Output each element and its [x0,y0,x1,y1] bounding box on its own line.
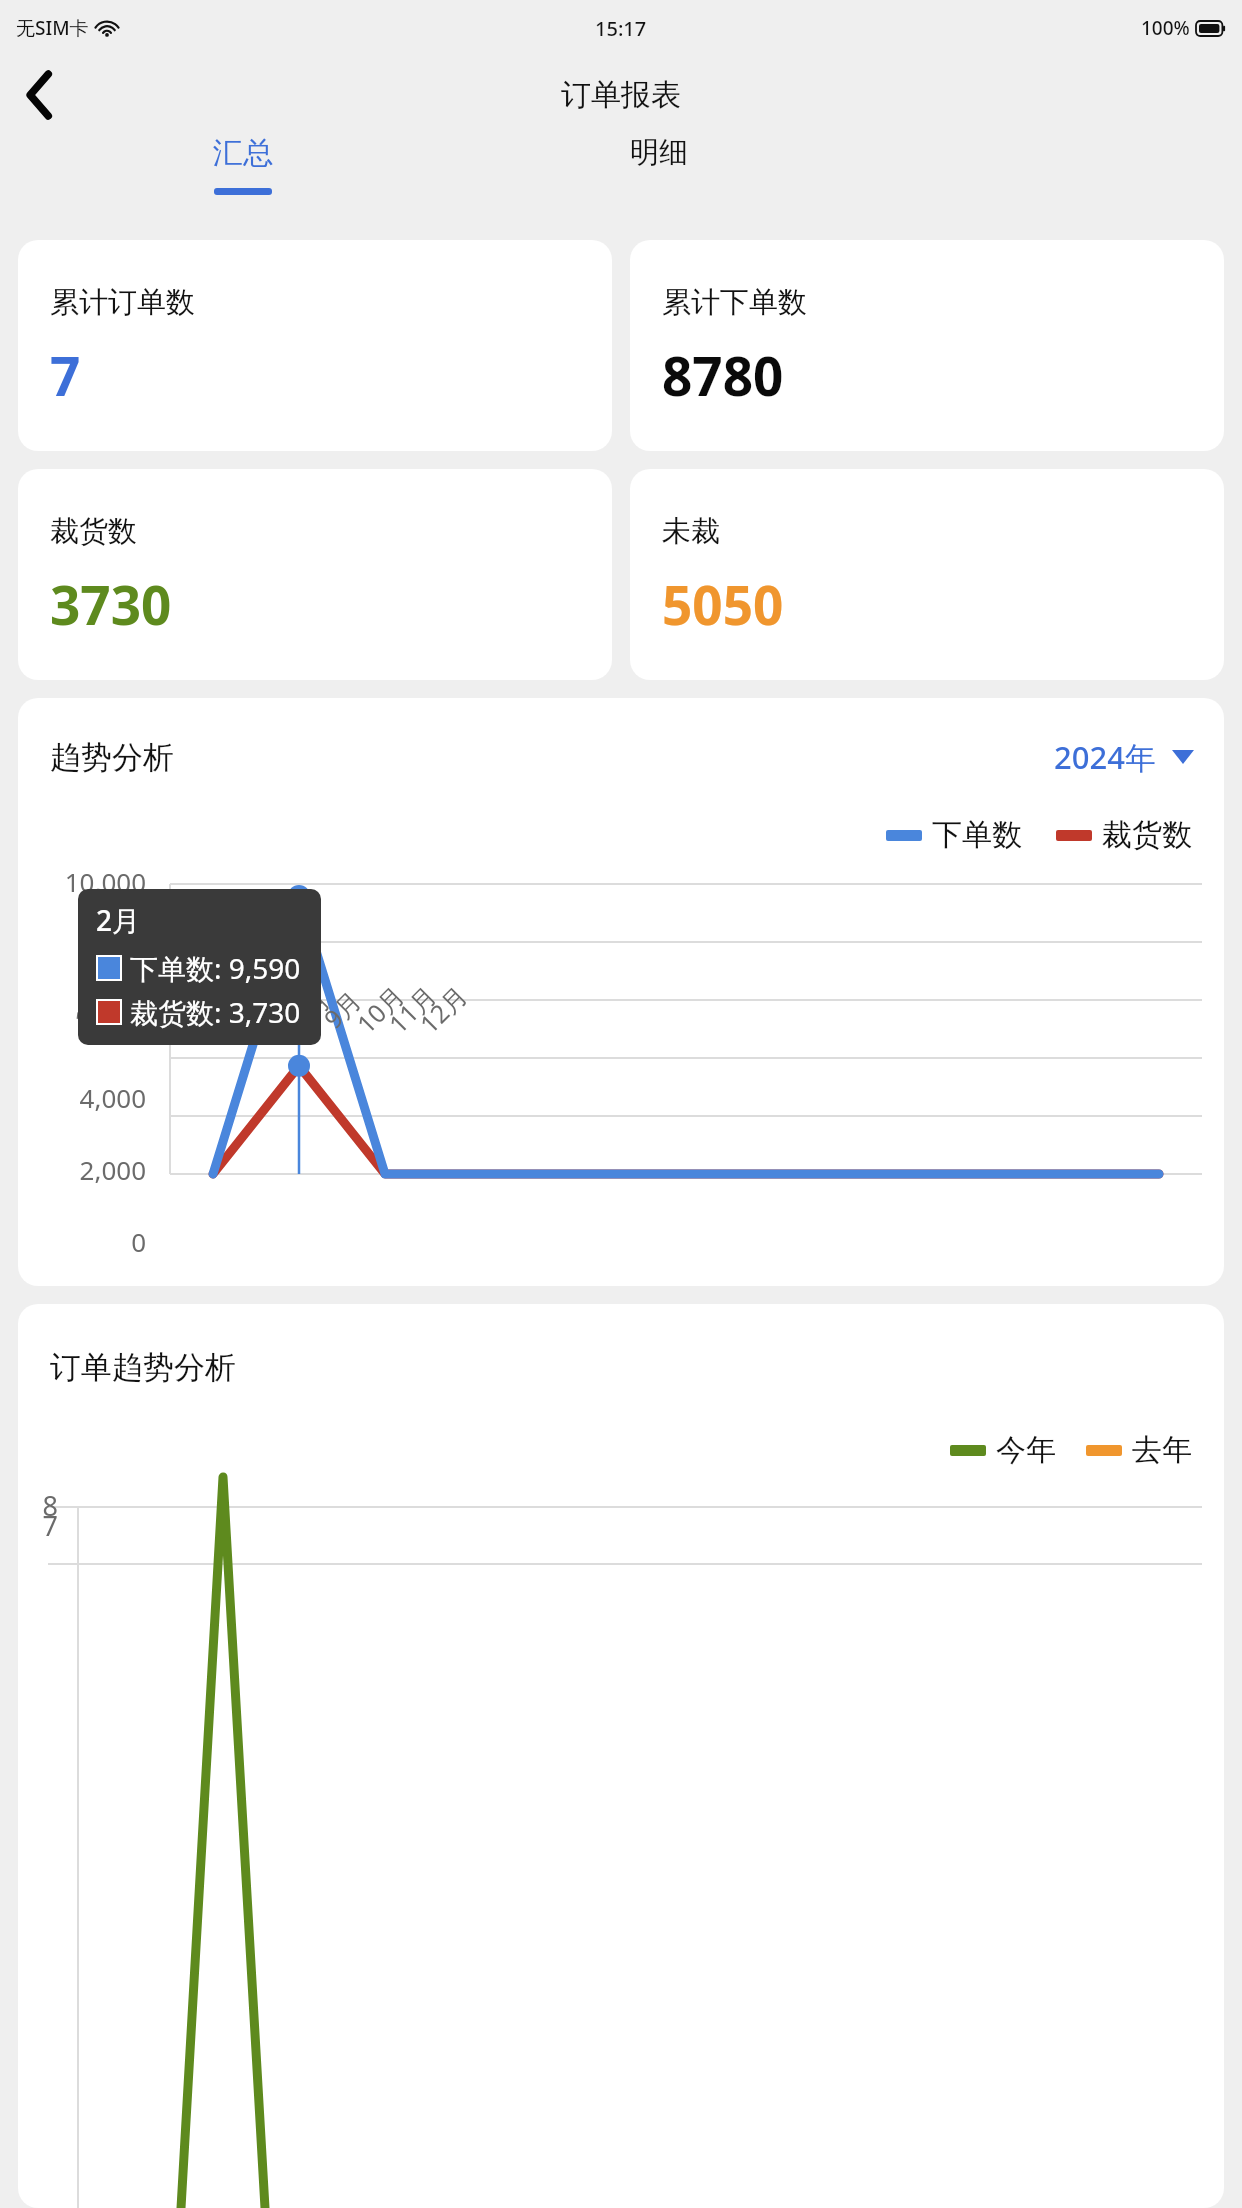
staticText: 8,000 [18,936,146,971]
staticText: 2月 [97,983,149,1035]
staticText: 累计下单数 [662,284,807,321]
staticText: 趋势分析 [50,738,174,777]
staticText: 100% [1141,15,1190,41]
staticText: 6月 [222,983,274,1035]
staticText: 1月 [66,983,118,1035]
button[interactable]: Back [10,65,70,125]
staticText: 明细 [630,134,688,171]
staticText: 订单报表 [561,76,681,114]
staticText: 8月 [285,983,337,1035]
staticText: 9月 [316,983,368,1035]
staticText: 8780 [662,339,784,411]
staticText: 4,000 [18,1080,146,1115]
staticText: 累计订单数 [50,284,195,321]
staticText: 11月 [381,978,443,1040]
staticText: 15:17 [595,15,647,42]
staticText: 今年 [996,1431,1056,1469]
staticText: 下单数 [932,816,1022,854]
staticText: 下单数: 9,590 [130,949,301,987]
button[interactable]: 累计订单数 [18,240,612,451]
staticText: 3730 [50,568,172,640]
staticText: 汇总 [213,134,273,172]
staticText: 裁货数 [1102,816,1192,854]
staticText: 2024年 [1054,736,1156,778]
staticText: 10月 [349,978,411,1040]
staticText: 裁货数: 3,730 [130,993,301,1031]
button[interactable]: 订单趋势分析 [18,1304,1224,2208]
staticText: 8 [20,1487,58,1524]
staticText: 裁货数 [50,513,137,550]
button[interactable]: 裁货数 [18,469,612,680]
staticText: 7月 [254,983,306,1035]
staticText: 去年 [1132,1431,1192,1469]
staticText: 6,000 [18,1008,146,1043]
staticText: 3月 [128,983,180,1035]
staticText: 5月 [191,983,243,1035]
staticText: 0 [18,1224,146,1259]
staticText: 7 [20,1507,58,1544]
staticText: 10,000 [18,864,146,899]
button[interactable]: 汇总 [213,134,273,195]
button[interactable]: 2024年 [1054,736,1194,778]
staticText: 7 [50,339,81,411]
button[interactable]: 累计下单数 [630,240,1224,451]
staticText: 2月 [96,901,141,939]
staticText: 订单趋势分析 [50,1348,236,1387]
staticText: 4月 [160,983,212,1035]
staticText: 无SIM卡 [16,15,89,41]
button[interactable]: 明细 [630,134,688,171]
staticText: 未裁 [662,513,720,550]
staticText: 5050 [662,568,784,640]
staticText: 12月 [412,978,474,1040]
button[interactable]: 未裁 [630,469,1224,680]
button[interactable]: 趋势分析 [18,698,1224,1286]
staticText: 2,000 [18,1152,146,1187]
